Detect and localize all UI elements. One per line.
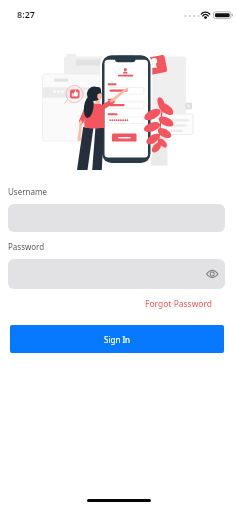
staticText: 8:27 bbox=[17, 8, 35, 20]
button[interactable]: Sign In bbox=[10, 325, 224, 353]
staticText: Password bbox=[8, 241, 45, 252]
staticText: Username bbox=[8, 186, 47, 197]
staticText: Sign In bbox=[104, 334, 131, 345]
button[interactable]: Forgot Password bbox=[145, 298, 213, 310]
button[interactable] bbox=[8, 259, 225, 289]
